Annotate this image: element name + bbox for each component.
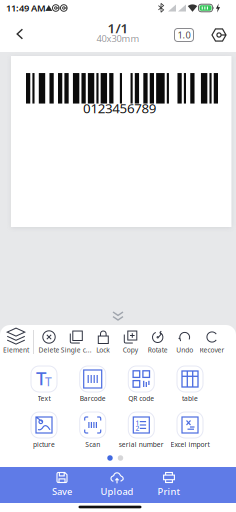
button[interactable]: Recover [198,325,225,357]
button[interactable]: Shape settings [207,23,231,47]
staticText: Barcode [80,394,106,403]
button[interactable]: table [166,365,214,405]
staticText: table [182,394,198,403]
button[interactable]: Copy [117,325,144,357]
button[interactable]: Barcode [69,365,117,405]
staticText: 2 [135,424,139,433]
staticText: 9 [149,99,157,117]
staticText: Excel import [170,440,209,449]
button[interactable]: Element [0,325,32,357]
button[interactable]: 1 [117,411,165,451]
staticText: 8 [141,99,149,117]
staticText: 1 [90,99,98,117]
button[interactable]: Upload [97,470,137,500]
staticText: 7 [134,99,142,117]
staticText: 40x30mm [96,32,139,45]
staticText: 6 [127,99,135,117]
staticText: 1.0 [177,29,190,41]
staticText: Delete [38,346,59,354]
staticText: Rotate [148,346,168,354]
button[interactable]: Lock [90,325,117,357]
button[interactable]: Delete [35,325,62,357]
staticText: Scan [85,440,100,449]
staticText: 3 [105,99,113,117]
staticText: Element [3,346,29,354]
staticText: 11:49 AM [6,2,46,14]
staticText: Save [52,485,72,498]
button[interactable]: Single c... [63,325,90,357]
staticText: Print [157,485,180,498]
button[interactable]: Rotate [144,325,171,357]
staticText: 5 [120,99,128,117]
staticText: 1/1 [107,19,128,37]
staticText: 1 [135,418,139,427]
staticText: Single c... [61,346,92,354]
staticText: Upload [100,485,133,498]
staticText: 2 [98,99,106,117]
button[interactable]: picture [20,411,68,451]
button[interactable]: QR code [117,365,165,405]
staticText: Text [37,394,50,403]
button[interactable]: Zoom scale [173,27,194,42]
button[interactable]: Collapse panel [106,309,130,323]
staticText: Recover [199,346,224,354]
staticText: QR code [128,394,154,403]
staticText: serial number [119,440,164,449]
staticText: 4 [112,99,120,117]
button[interactable]: Excel import [166,411,214,451]
button[interactable]: Undo [171,325,198,357]
staticText: 0 [83,99,91,117]
staticText: Lock [96,346,110,354]
staticText: Copy [123,346,138,354]
button[interactable]: Save [42,470,82,500]
staticText: picture [33,440,55,449]
button[interactable]: Print [149,470,189,500]
button[interactable]: Scan [69,411,117,451]
staticText: T [36,366,46,390]
staticText: Undo [176,346,193,354]
staticText: T [45,373,52,389]
button[interactable]: Back [7,21,33,47]
button[interactable]: T [20,365,68,405]
